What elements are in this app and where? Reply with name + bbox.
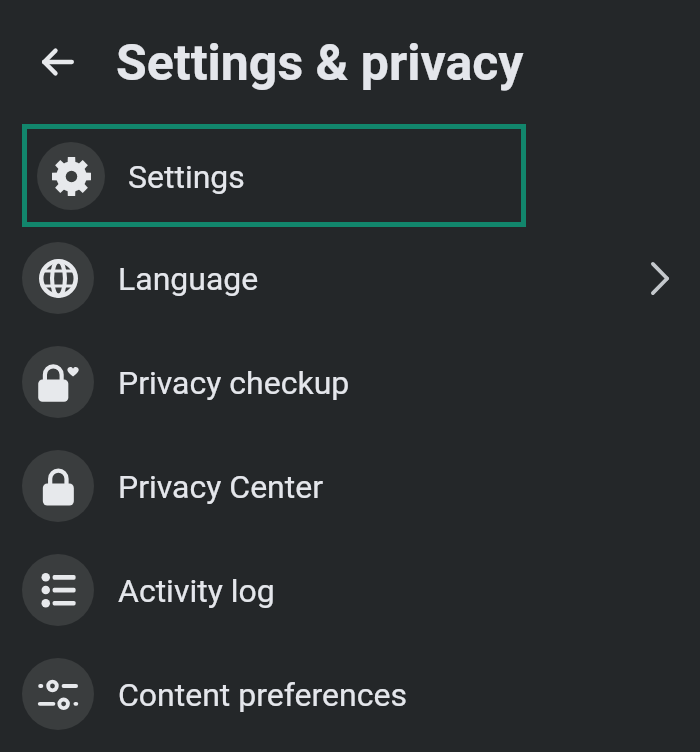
button[interactable]: Back bbox=[30, 34, 86, 90]
button[interactable]: Privacy Center bbox=[0, 434, 700, 538]
staticText: Privacy Center bbox=[118, 468, 324, 506]
staticText: Settings bbox=[128, 158, 245, 196]
staticText: Privacy checkup bbox=[118, 364, 350, 402]
button[interactable]: Settings bbox=[22, 124, 526, 227]
staticText: Content preferences bbox=[118, 676, 407, 714]
button[interactable]: Privacy checkup bbox=[0, 330, 700, 434]
staticText: Language bbox=[118, 260, 259, 298]
staticText: Settings & privacy bbox=[116, 34, 524, 93]
button[interactable]: Content preferences bbox=[0, 642, 700, 746]
button[interactable]: Activity log bbox=[0, 538, 700, 642]
staticText: Activity log bbox=[118, 572, 275, 610]
button[interactable]: Open Language bbox=[636, 254, 684, 302]
button[interactable]: Language bbox=[0, 226, 700, 330]
